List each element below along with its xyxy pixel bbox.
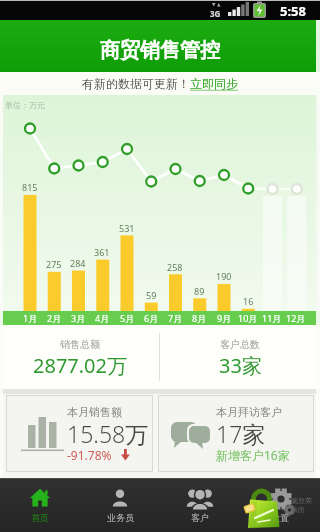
staticText: 2月 <box>47 312 62 324</box>
staticText: 815 <box>22 181 38 193</box>
staticText: 截图 <box>291 505 305 514</box>
button[interactable]: 本月拜访客户 <box>159 396 313 471</box>
staticText: 6月 <box>144 312 159 324</box>
staticText: 2877.02万 <box>33 352 127 378</box>
staticText: 4月 <box>95 312 110 324</box>
staticText: 11月 <box>262 312 282 324</box>
button[interactable]: 本月销售额 <box>7 396 152 471</box>
staticText: 本月拜访客户 <box>216 405 282 419</box>
staticText: 284 <box>70 257 86 269</box>
button[interactable]: 设置 <box>240 478 320 532</box>
button[interactable]: 客户 <box>160 478 240 532</box>
staticText: 33家 <box>219 352 262 378</box>
staticText: 8月 <box>192 312 207 324</box>
staticText: 275 <box>46 258 62 270</box>
staticText: 12月 <box>286 312 306 324</box>
button[interactable]: 首页 <box>0 478 80 532</box>
staticText: 16 <box>243 295 254 307</box>
staticText: 业务员 <box>107 512 134 523</box>
staticText: 5月 <box>120 312 135 324</box>
staticText: 豌豆荚 <box>291 496 312 505</box>
button[interactable]: 有新的数据可更新！ <box>0 72 320 95</box>
staticText: 9月 <box>217 312 232 324</box>
staticText: -91.78% <box>67 447 112 463</box>
staticText: 3G <box>210 8 221 19</box>
staticText: 15.58万 <box>67 418 149 446</box>
staticText: 销售总额 <box>60 338 100 351</box>
staticText: 17家 <box>216 418 266 446</box>
staticText: 客户 <box>191 512 209 523</box>
staticText: 1月 <box>23 312 38 324</box>
staticText: 首页 <box>31 512 49 523</box>
staticText: 7月 <box>168 312 183 324</box>
staticText: 190 <box>216 270 232 282</box>
staticText: 59 <box>146 289 157 301</box>
staticText: 设置 <box>271 512 289 523</box>
staticText: 单位：万元 <box>5 100 45 110</box>
staticText: 258 <box>167 261 183 273</box>
staticText: 客户总数 <box>220 338 260 351</box>
staticText: 531 <box>119 222 135 234</box>
staticText: 立即同步 <box>190 76 238 91</box>
staticText: 5:58 <box>280 2 306 19</box>
staticText: 新增客户16家 <box>216 447 290 463</box>
staticText: 3月 <box>71 312 86 324</box>
staticText: 本月销售额 <box>67 405 122 419</box>
staticText: 有新的数据可更新！ <box>82 76 190 91</box>
staticText: 商贸销售管控 <box>100 38 220 63</box>
button[interactable]: 业务员 <box>80 478 160 532</box>
staticText: 10月 <box>238 312 258 324</box>
staticText: 361 <box>94 246 110 258</box>
staticText: 89 <box>194 285 205 297</box>
